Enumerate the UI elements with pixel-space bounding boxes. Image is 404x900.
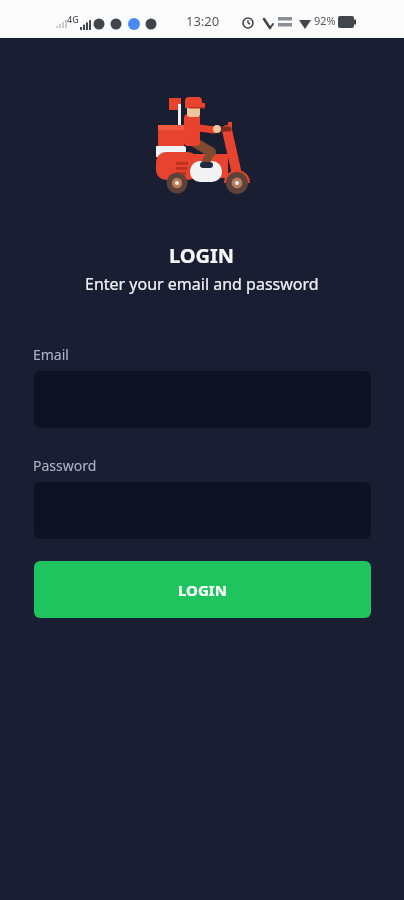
staticText: LOGIN [178, 580, 227, 600]
staticText: 4G [67, 13, 79, 25]
staticText: LOGIN [169, 242, 235, 269]
staticText: 13:20 [186, 12, 220, 30]
button[interactable]: LOGIN [34, 561, 371, 618]
staticText: 92% [314, 13, 336, 28]
staticText: Password [33, 456, 97, 475]
staticText: Enter your email and password [85, 273, 319, 295]
staticText: Email [33, 345, 69, 364]
